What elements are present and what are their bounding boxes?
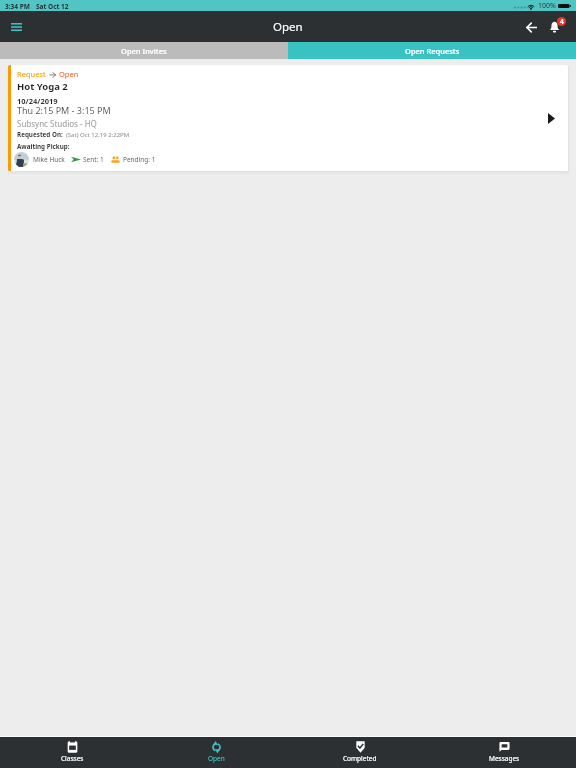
staticText: Sat Oct 12 (36, 2, 69, 11)
staticText: Awaiting Pickup: (17, 142, 70, 151)
button[interactable]: Open (144, 737, 288, 768)
staticText: Request (17, 69, 46, 79)
staticText: Pending: 1 (123, 155, 156, 164)
staticText: (Sat) Oct 12,19 2:22PM (66, 131, 130, 139)
staticText: 10/24/2019 (17, 96, 58, 106)
button[interactable]: Completed (288, 737, 432, 768)
staticText: Hot Yoga 2 (17, 80, 68, 93)
staticText: Thu 2:15 PM - 3:15 PM (17, 104, 111, 116)
staticText: Completed (343, 754, 377, 763)
button[interactable]: Messages (432, 737, 576, 768)
staticText: 100% (538, 1, 556, 11)
staticText: Open Requests (405, 46, 460, 56)
staticText: Open (59, 69, 79, 79)
button[interactable]: Classes (0, 737, 144, 768)
button[interactable]: Open Requests (288, 42, 576, 59)
staticText: Mike Huck (33, 155, 65, 164)
staticText: Messages (489, 754, 520, 763)
staticText: Subsync Studios - HQ (17, 118, 97, 129)
button[interactable]: Open Invites (0, 42, 288, 59)
staticText: 4 (560, 17, 564, 26)
staticText: Requested On: (17, 130, 63, 139)
staticText: Classes (61, 754, 84, 763)
button[interactable]: Request (8, 65, 568, 171)
staticText: Open (208, 754, 225, 763)
staticText: Open Invites (121, 46, 167, 56)
button[interactable]: Notifications (544, 16, 566, 38)
staticText: Sent: 1 (83, 155, 104, 164)
button[interactable]: Open navigation menu (6, 16, 27, 37)
staticText: 3:34 PM (5, 2, 30, 11)
staticText: Open (273, 19, 303, 35)
button[interactable]: Back (521, 17, 541, 37)
